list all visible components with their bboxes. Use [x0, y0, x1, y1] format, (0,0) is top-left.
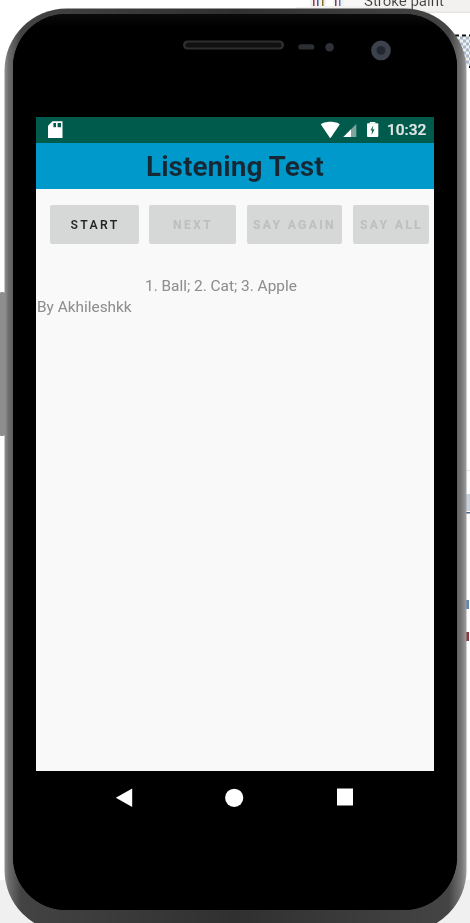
button[interactable]: Recent apps — [307, 781, 367, 815]
staticText: By Akhileshkk — [37, 298, 132, 316]
button[interactable]: START — [50, 205, 139, 244]
button[interactable]: Back — [96, 781, 156, 815]
staticText: 10:32 — [387, 121, 427, 139]
button[interactable]: SAY AGAIN — [247, 205, 342, 244]
staticText: Stroke paint — [364, 0, 444, 10]
staticText: Listening Test — [146, 150, 324, 183]
staticText: 1. Ball; 2. Cat; 3. Apple — [145, 277, 297, 295]
button[interactable]: SAY ALL — [353, 205, 429, 244]
staticText: SAY ALL — [360, 218, 423, 232]
staticText: SAY AGAIN — [253, 218, 336, 232]
staticText: NEXT — [173, 218, 213, 232]
button[interactable]: NEXT — [149, 205, 236, 244]
staticText: START — [70, 218, 120, 232]
button[interactable]: Home — [204, 781, 264, 815]
